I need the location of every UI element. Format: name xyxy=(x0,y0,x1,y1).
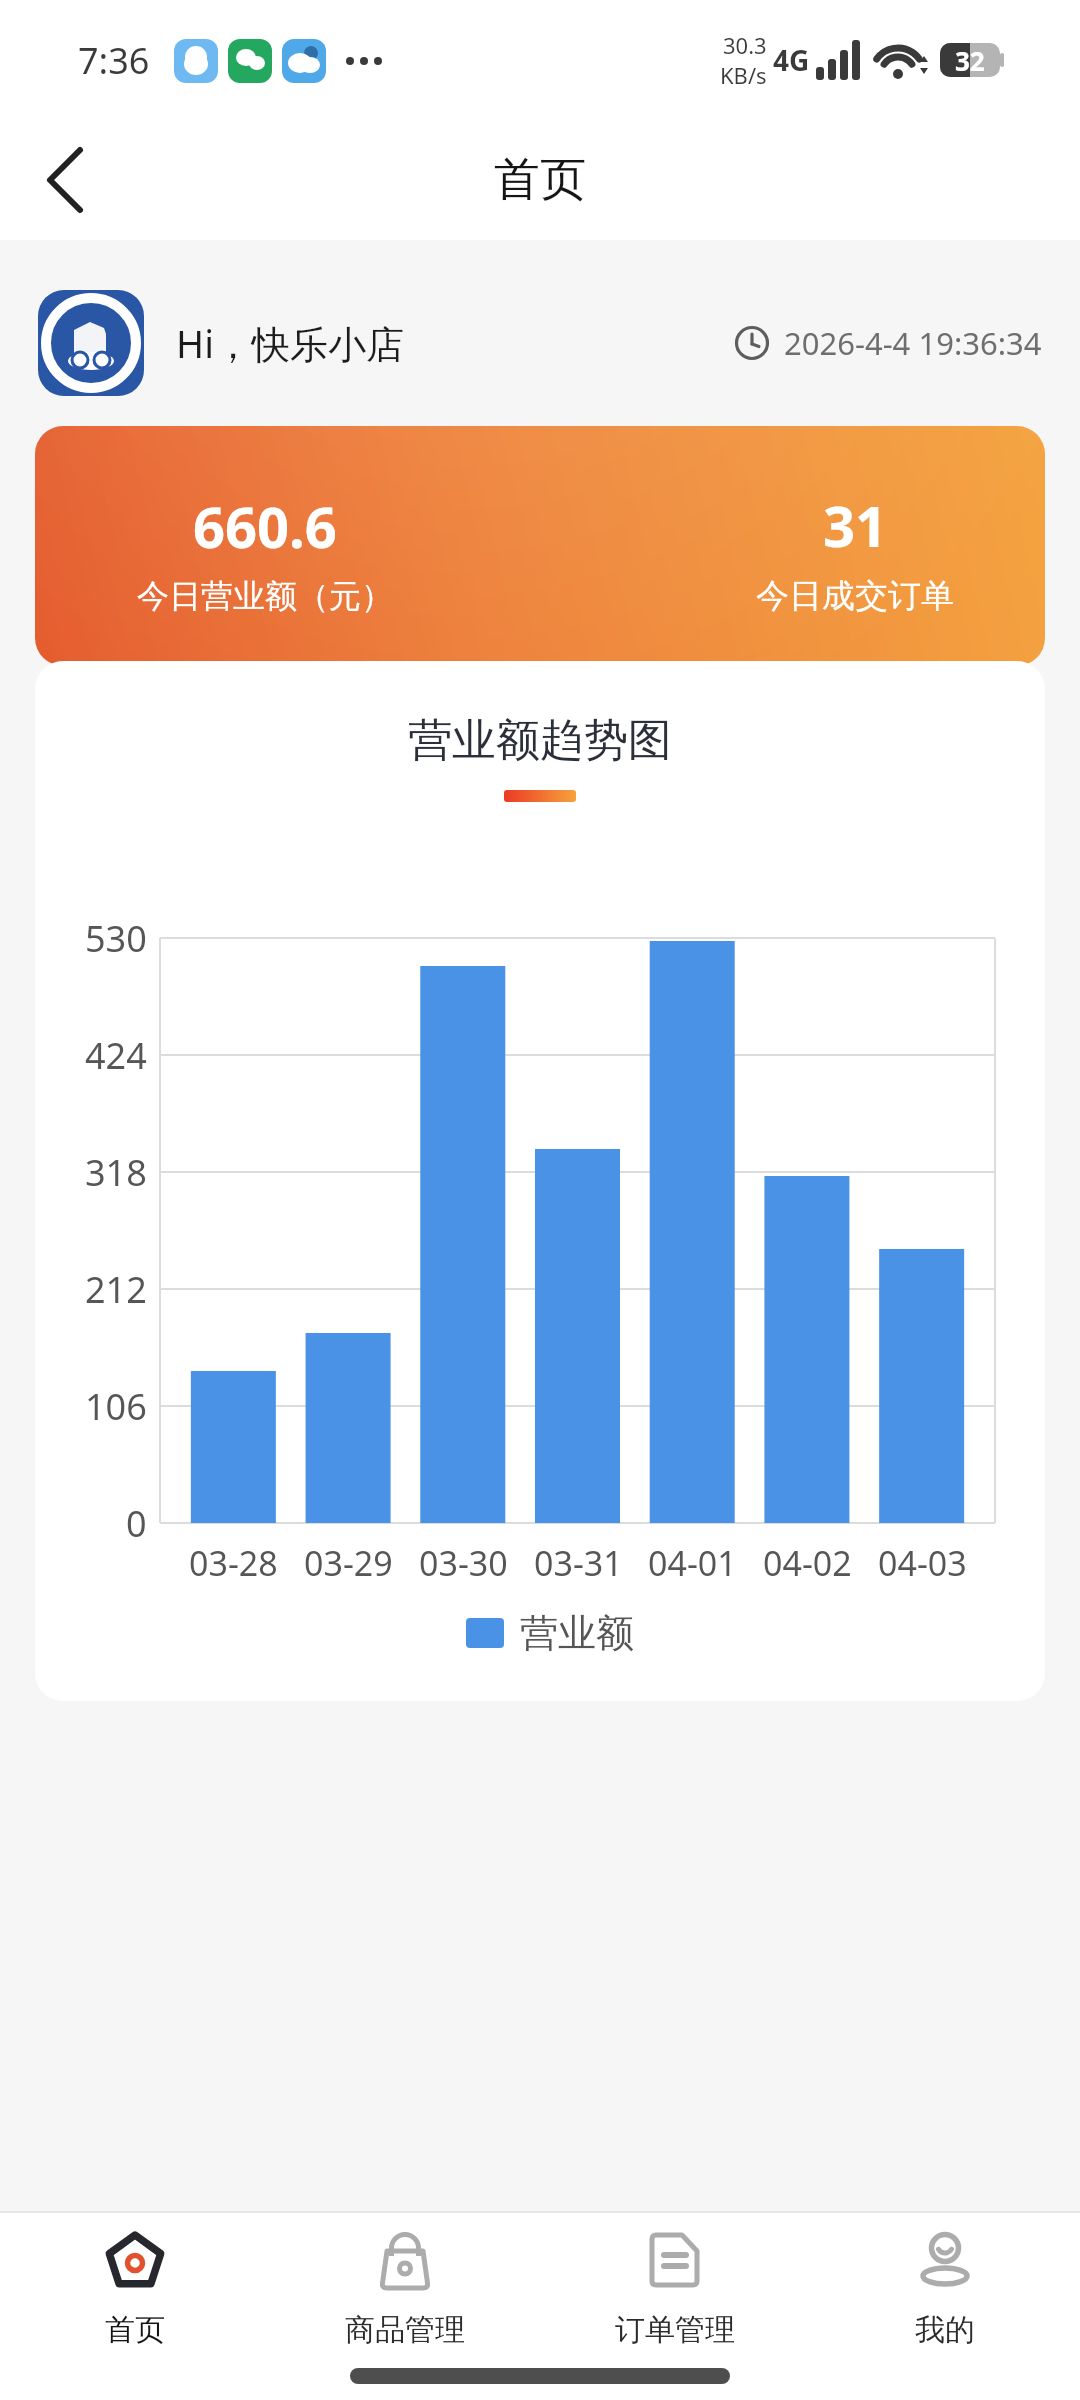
staticText: 03-31 xyxy=(534,1540,623,1586)
staticText: 30.3 xyxy=(723,30,767,60)
staticText: 31 xyxy=(823,487,888,563)
staticText: 318 xyxy=(85,1148,147,1197)
staticText: 03-29 xyxy=(304,1540,393,1586)
staticText: 660.6 xyxy=(193,488,337,564)
staticText: 今日营业额（元） xyxy=(137,576,393,616)
staticText: 0 xyxy=(126,1499,147,1548)
staticText: 2026-4-4 19:36:34 xyxy=(784,322,1042,364)
staticText: 106 xyxy=(85,1382,147,1431)
staticText: 212 xyxy=(85,1265,147,1314)
staticText: 商品管理 xyxy=(345,2311,465,2349)
button[interactable]: 660.6 xyxy=(35,426,1045,666)
staticText: 订单管理 xyxy=(615,2311,735,2349)
staticText: Hi，快乐小店 xyxy=(176,317,404,369)
staticText: 4G xyxy=(773,41,810,79)
staticText: 424 xyxy=(85,1031,147,1080)
staticText: 我的 xyxy=(915,2311,975,2349)
button[interactable]: 订单管理 xyxy=(540,2213,810,2349)
staticText: 营业额 xyxy=(520,1609,634,1657)
staticText: 03-30 xyxy=(419,1540,508,1586)
staticText: 04-01 xyxy=(648,1540,737,1586)
staticText: 今日成交订单 xyxy=(756,575,954,617)
button[interactable]: 首页 xyxy=(0,2213,270,2349)
staticText: KB/s xyxy=(720,60,767,90)
staticText: 03-28 xyxy=(189,1540,278,1586)
staticText: 530 xyxy=(85,914,147,963)
staticText: 首页 xyxy=(105,2311,165,2349)
staticText: 04-03 xyxy=(878,1540,967,1586)
staticText: 首页 xyxy=(494,151,586,209)
button[interactable] xyxy=(40,150,100,210)
staticText: 营业额趋势图 xyxy=(408,713,672,768)
staticText: 32 xyxy=(955,43,985,78)
staticText: 7:36 xyxy=(78,36,150,85)
button[interactable]: 我的 xyxy=(810,2213,1080,2349)
button[interactable]: 商品管理 xyxy=(270,2213,540,2349)
staticText: 04-02 xyxy=(763,1540,852,1586)
